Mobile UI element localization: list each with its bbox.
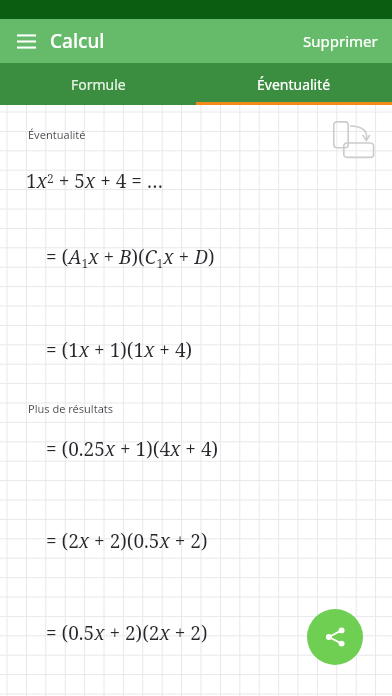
staticText: = (0.5x + 2)(2x + 2) — [46, 620, 208, 646]
staticText: 1x2 + 5x + 4 = … — [26, 168, 164, 194]
button[interactable]: Share — [307, 609, 363, 665]
staticText: = (0.25x + 1)(4x + 4) — [46, 436, 219, 462]
button[interactable]: Éventualité — [196, 63, 392, 105]
staticText: Supprimer — [303, 31, 378, 51]
button[interactable]: Formule — [0, 63, 196, 105]
staticText: Formule — [71, 75, 126, 94]
staticText: Plus de résultats — [28, 401, 114, 416]
staticText: = (2x + 2)(0.5x + 2) — [46, 528, 208, 554]
button[interactable]: Rotate device — [328, 119, 376, 167]
staticText: = (A1x + B)(C1x + D) — [46, 244, 215, 271]
staticText: Calcul — [50, 28, 105, 54]
staticText: Éventualité — [257, 75, 331, 94]
staticText: Éventualité — [28, 127, 86, 142]
button[interactable]: Open navigation menu — [8, 23, 44, 59]
button[interactable]: Supprimer — [289, 21, 392, 61]
staticText: = (1x + 1)(1x + 4) — [46, 337, 193, 363]
